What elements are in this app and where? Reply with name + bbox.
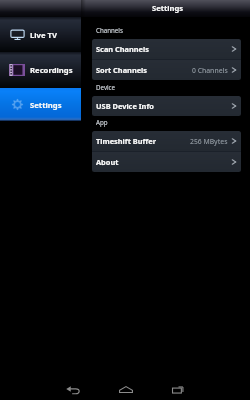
staticText: App <box>96 118 108 126</box>
staticText: Settings <box>30 100 62 110</box>
staticText: Sort Channels <box>96 65 148 75</box>
button[interactable]: Home <box>99 375 152 400</box>
button[interactable]: Recordings <box>0 52 81 88</box>
button[interactable]: Settings <box>0 88 81 121</box>
button[interactable]: Timeshift Buffer <box>92 131 241 151</box>
button[interactable]: Sort Channels <box>92 60 241 80</box>
staticText: Timeshift Buffer <box>96 136 156 146</box>
staticText: Settings <box>152 3 184 13</box>
button[interactable]: Live TV <box>0 17 81 52</box>
button[interactable]: About <box>92 152 241 172</box>
button[interactable]: Back <box>46 375 99 400</box>
staticText: About <box>96 157 119 167</box>
staticText: Channels <box>96 26 123 34</box>
staticText: Recordings <box>30 65 73 75</box>
staticText: Scan Channels <box>96 44 149 54</box>
staticText: Device <box>96 83 116 91</box>
staticText: Live TV <box>30 30 58 40</box>
staticText: 256 MBytes <box>190 137 228 146</box>
button[interactable]: Scan Channels <box>92 39 241 59</box>
button[interactable]: Recent apps <box>152 375 205 400</box>
button[interactable]: USB Device Info <box>92 96 241 116</box>
staticText: 0 Channels <box>192 66 228 75</box>
staticText: USB Device Info <box>96 101 154 111</box>
